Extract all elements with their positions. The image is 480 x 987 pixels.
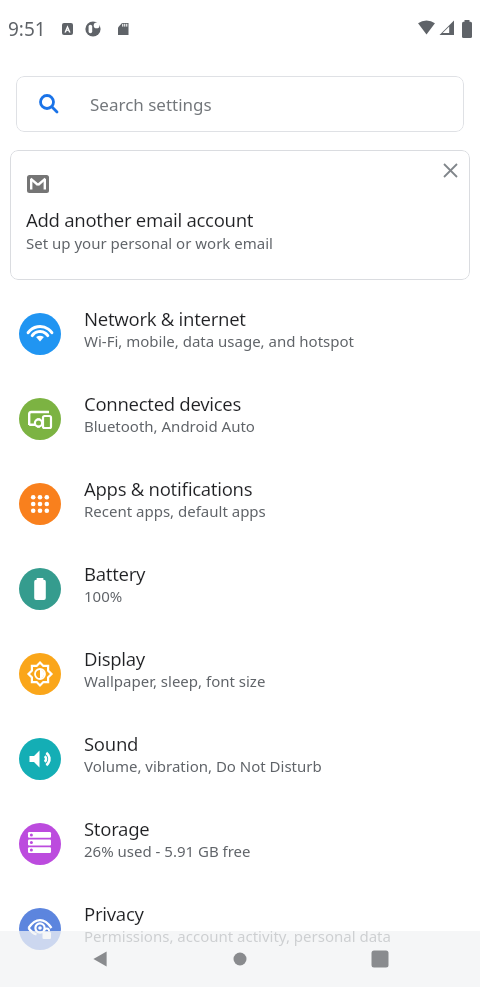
button[interactable]: [438, 158, 462, 182]
staticText: Battery: [84, 561, 146, 586]
staticText: 26% used - 5.91 GB free: [84, 841, 251, 861]
button[interactable]: Sound: [0, 716, 480, 801]
button[interactable]: Apps & notifications: [0, 461, 480, 546]
staticText: Permissions, account activity, personal …: [84, 926, 391, 946]
button[interactable]: Privacy: [0, 886, 480, 971]
button[interactable]: [170, 931, 310, 987]
staticText: Wallpaper, sleep, font size: [84, 671, 266, 691]
staticText: Display: [84, 646, 146, 671]
staticText: Network & internet: [84, 306, 246, 331]
staticText: 9:51: [8, 16, 46, 42]
button[interactable]: [30, 931, 170, 987]
button[interactable]: Display: [0, 631, 480, 716]
button[interactable]: Connected devices: [0, 376, 480, 461]
staticText: Add another email account: [26, 207, 254, 232]
staticText: Volume, vibration, Do Not Disturb: [84, 756, 322, 776]
button[interactable]: Storage: [0, 801, 480, 886]
button[interactable]: [310, 931, 450, 987]
staticText: Set up your personal or work email: [26, 233, 273, 253]
staticText: Connected devices: [84, 391, 242, 416]
staticText: Sound: [84, 731, 139, 756]
button[interactable]: Battery: [0, 546, 480, 631]
button[interactable]: Add another email account: [10, 150, 470, 280]
staticText: Privacy: [84, 901, 144, 926]
staticText: Recent apps, default apps: [84, 501, 266, 521]
button[interactable]: Network & internet: [0, 291, 480, 376]
staticText: Storage: [84, 816, 150, 841]
staticText: Search settings: [90, 93, 212, 116]
staticText: 100%: [84, 586, 123, 606]
staticText: Wi-Fi, mobile, data usage, and hotspot: [84, 331, 354, 351]
button[interactable]: Search settings: [16, 76, 464, 132]
staticText: Bluetooth, Android Auto: [84, 416, 255, 436]
staticText: Apps & notifications: [84, 476, 253, 501]
